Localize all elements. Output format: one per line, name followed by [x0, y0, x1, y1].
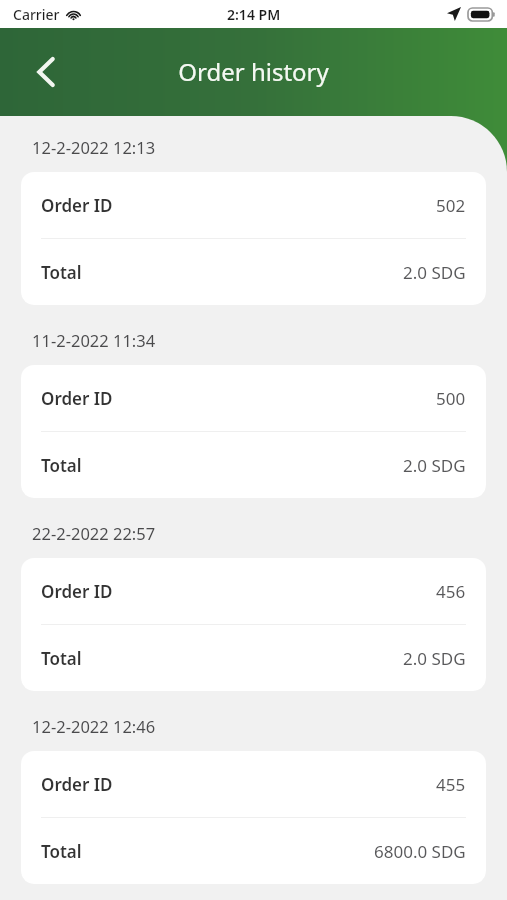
staticText: 12-2-2022 12:46 [32, 715, 156, 737]
staticText: 455 [436, 773, 466, 796]
staticText: Order history [178, 55, 329, 88]
button[interactable]: Order ID [21, 172, 486, 305]
staticText: 2:14 PM [227, 5, 281, 24]
staticText: Order ID [41, 387, 113, 410]
staticText: 2.0 SDG [403, 647, 466, 670]
staticText: Total [41, 261, 82, 284]
staticText: Order ID [41, 194, 113, 217]
staticText: 456 [436, 580, 466, 603]
staticText: 2.0 SDG [403, 454, 466, 477]
staticText: 502 [436, 194, 466, 217]
staticText: 11-2-2022 11:34 [32, 329, 156, 351]
staticText: Order ID [41, 773, 113, 796]
button[interactable]: Back [20, 46, 72, 98]
staticText: Total [41, 840, 82, 863]
staticText: 12-2-2022 12:13 [32, 136, 156, 158]
staticText: Carrier [13, 5, 60, 24]
button[interactable]: Order ID [21, 365, 486, 498]
staticText: Total [41, 647, 82, 670]
staticText: 500 [436, 387, 466, 410]
staticText: 2.0 SDG [403, 261, 466, 284]
staticText: Total [41, 454, 82, 477]
button[interactable]: Order ID [21, 558, 486, 691]
staticText: Order ID [41, 580, 113, 603]
button[interactable]: Order ID [21, 751, 486, 884]
staticText: 6800.0 SDG [374, 840, 466, 863]
staticText: 22-2-2022 22:57 [32, 522, 156, 544]
